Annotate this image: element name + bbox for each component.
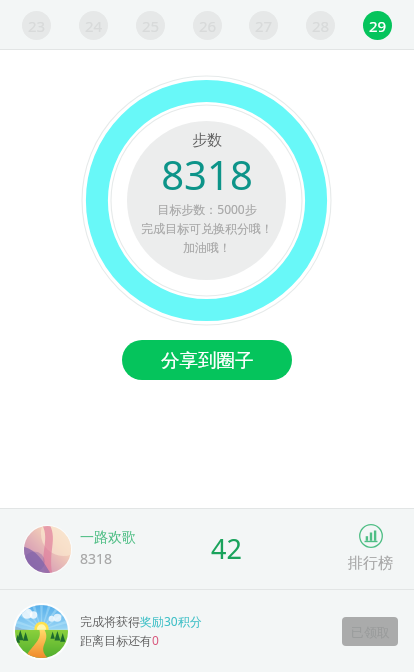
button[interactable]: 28 bbox=[306, 11, 335, 40]
staticText: 排行榜 bbox=[348, 554, 393, 573]
button[interactable]: 分享到圈子 bbox=[122, 340, 292, 380]
button[interactable]: 23 bbox=[22, 11, 51, 40]
button[interactable]: 27 bbox=[249, 11, 278, 40]
staticText: 8318 bbox=[0, 147, 414, 201]
staticText: 已领取 bbox=[351, 624, 390, 640]
staticText: 完成将获得奖励30积分 bbox=[80, 613, 202, 629]
staticText: 8318 bbox=[80, 549, 113, 568]
staticText: 完成目标可兑换积分哦！ bbox=[0, 221, 414, 236]
staticText: 28 bbox=[312, 16, 330, 36]
button[interactable]: 25 bbox=[136, 11, 165, 40]
button[interactable]: 29 bbox=[363, 11, 392, 40]
staticText: 距离目标还有0 bbox=[80, 632, 159, 648]
staticText: 29 bbox=[369, 16, 387, 36]
staticText: 27 bbox=[255, 16, 273, 36]
staticText: 一路欢歌 bbox=[80, 529, 136, 547]
button[interactable]: 24 bbox=[79, 11, 108, 40]
button[interactable]: 排行榜 bbox=[348, 524, 393, 573]
staticText: 步数 bbox=[0, 131, 414, 150]
staticText: 42 bbox=[211, 530, 242, 567]
staticText: 23 bbox=[28, 16, 46, 36]
staticText: 26 bbox=[199, 16, 217, 36]
staticText: 分享到圈子 bbox=[161, 349, 254, 372]
staticText: 24 bbox=[85, 16, 103, 36]
staticText: 25 bbox=[142, 16, 160, 36]
button[interactable]: 26 bbox=[193, 11, 222, 40]
staticText: 加油哦！ bbox=[0, 240, 414, 255]
staticText: 目标步数：5000步 bbox=[0, 201, 414, 217]
button[interactable]: 一路欢歌 bbox=[0, 509, 414, 589]
button[interactable]: 已领取 bbox=[342, 617, 398, 646]
